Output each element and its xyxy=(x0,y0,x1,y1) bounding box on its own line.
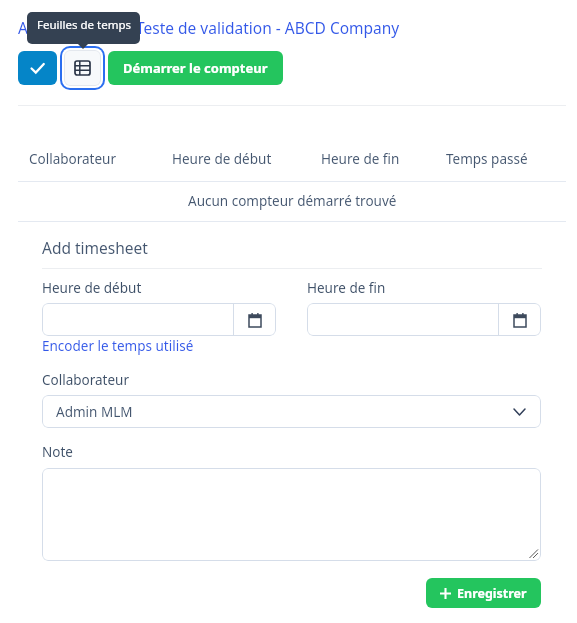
staticText: Collaborateur xyxy=(29,150,116,168)
button[interactable]: Démarrer le compteur xyxy=(108,51,283,85)
button[interactable]: Choisir une date xyxy=(499,303,541,336)
button[interactable]: Admin MLM xyxy=(42,395,541,428)
staticText: Heure de fin xyxy=(307,279,386,297)
button[interactable]: Encoder le temps utilisé xyxy=(42,337,194,355)
button[interactable] xyxy=(42,303,233,336)
staticText: Enregistrer xyxy=(457,585,527,602)
staticText: Heure de début xyxy=(42,279,142,297)
staticText: Temps passé xyxy=(446,150,528,168)
button[interactable]: Teste de validation - ABCD Company xyxy=(136,17,400,38)
button[interactable]: Enregistrer xyxy=(426,578,541,608)
staticText: Démarrer le compteur xyxy=(123,59,268,77)
staticText: Feuilles de temps xyxy=(37,17,131,33)
staticText: Collaborateur xyxy=(42,371,129,389)
staticText: Admin MLM xyxy=(56,403,133,421)
button[interactable]: Choisir une date xyxy=(234,303,276,336)
staticText: Heure de début xyxy=(172,150,272,168)
button[interactable]: Feuilles de temps xyxy=(64,50,101,86)
button[interactable]: Valider xyxy=(18,51,57,85)
staticText: Aucun compteur démarré trouvé xyxy=(188,192,397,210)
button[interactable] xyxy=(42,468,541,561)
staticText: Add timesheet xyxy=(42,237,148,258)
staticText: Heure de fin xyxy=(321,150,400,168)
staticText: Note xyxy=(42,443,73,461)
button[interactable]: Att xyxy=(18,17,40,38)
button[interactable] xyxy=(307,303,498,336)
